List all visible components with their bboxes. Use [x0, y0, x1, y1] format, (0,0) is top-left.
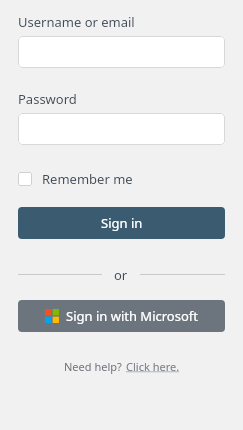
button[interactable]: Remember me: [18, 169, 133, 189]
staticText: Username or email: [18, 13, 135, 31]
other: Microsoft logo: [45, 309, 59, 323]
button[interactable]: Text input field: [18, 36, 225, 68]
staticText: Remember me: [42, 170, 133, 188]
staticText: Click here.: [126, 359, 180, 374]
staticText: Need help?: [64, 359, 122, 374]
staticText: Sign in: [101, 214, 143, 232]
button[interactable]: Microsoft logo: [18, 300, 225, 332]
button[interactable]: Click here.: [126, 359, 180, 374]
button[interactable]: Sign in: [18, 207, 225, 239]
staticText: or: [114, 266, 128, 282]
button[interactable]: Text input field: [18, 113, 225, 145]
staticText: Sign in with Microsoft: [66, 307, 198, 325]
staticText: Password: [18, 90, 77, 108]
